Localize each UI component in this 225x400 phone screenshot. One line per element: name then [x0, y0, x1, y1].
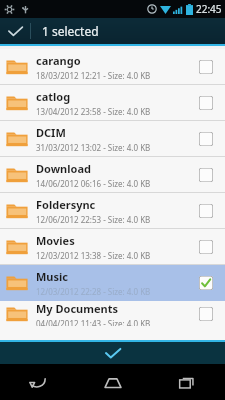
staticText: 04/04/2012 11:43 - Size: 4.0 KB [36, 318, 151, 326]
button[interactable]: Not selected [199, 307, 213, 321]
button[interactable]: Not selected [199, 132, 213, 146]
button[interactable]: Done [0, 18, 30, 44]
button[interactable]: Not selected [199, 96, 213, 110]
button[interactable]: Not selected [199, 168, 213, 182]
button[interactable]: Recent apps [150, 364, 225, 400]
button[interactable]: Download [0, 157, 225, 193]
button[interactable]: Movies [0, 229, 225, 265]
staticText: DCIM [36, 125, 66, 140]
button[interactable]: Not selected [199, 60, 213, 74]
button[interactable]: My Documents [0, 301, 225, 326]
staticText: My Documents [36, 301, 119, 316]
button[interactable]: Home [75, 364, 150, 400]
staticText: Download [36, 161, 91, 176]
button[interactable]: Confirm selection [0, 342, 225, 364]
button[interactable]: DCIM [0, 121, 225, 157]
staticText: /mnt/sdcard [4, 48, 57, 60]
staticText: 31/03/2012 13:02 - Size: 4.0 KB [36, 142, 151, 153]
staticText: 1 selected [42, 23, 99, 39]
staticText: carango [36, 53, 81, 68]
staticText: 12/03/2012 13:38 - Size: 4.0 KB [36, 250, 151, 261]
button[interactable]: Selected [199, 276, 213, 290]
staticText: Movies [36, 233, 75, 248]
button[interactable]: catlog [0, 85, 225, 121]
button[interactable]: Foldersync [0, 193, 225, 229]
staticText: Foldersync [36, 197, 96, 212]
staticText: Music [36, 269, 69, 284]
button[interactable]: Not selected [199, 204, 213, 218]
staticText: 13/04/2012 23:58 - Size: 4.0 KB [36, 106, 151, 117]
staticText: 12/03/2012 22:28 - Size: 4.0 KB [36, 286, 151, 297]
button[interactable]: Music [0, 265, 225, 301]
staticText: 22:45 [196, 2, 222, 16]
button[interactable]: Not selected [199, 240, 213, 254]
button[interactable]: carango [0, 49, 225, 85]
staticText: catlog [36, 89, 71, 104]
button[interactable]: Back [0, 364, 75, 400]
staticText: 14/06/2012 06:16 - Size: 4.0 KB [36, 178, 151, 189]
staticText: 12/06/2012 22:53 - Size: 4.0 KB [36, 214, 151, 225]
staticText: 18/03/2012 12:21 - Size: 4.0 KB [36, 70, 151, 81]
